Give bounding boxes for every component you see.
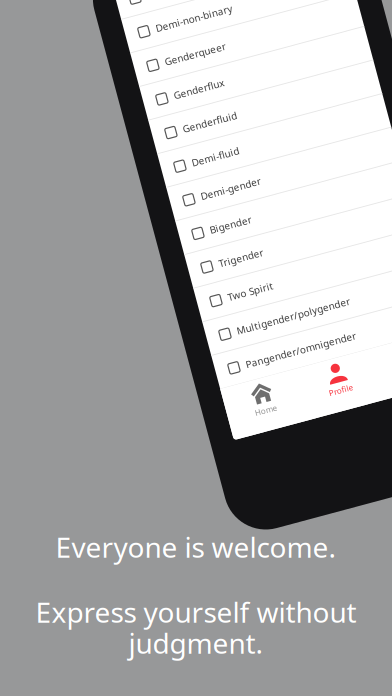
staticText: Pangender/omnigender: [209, 340, 323, 354]
staticText: Bigender: [209, 201, 252, 214]
staticText: Trigender: [209, 236, 255, 249]
staticText: judgment.: [128, 624, 263, 662]
staticText: Home: [206, 391, 229, 401]
staticText: Express yourself without: [35, 593, 356, 631]
button[interactable]: Home: [178, 364, 256, 417]
button[interactable]: Two Spirit: [178, 260, 392, 295]
button[interactable]: Bigender: [178, 190, 392, 225]
button[interactable]: Genderflux: [178, 51, 392, 86]
button[interactable]: Profile: [256, 364, 334, 417]
button[interactable]: Trigender: [178, 225, 392, 260]
button[interactable]: Demi-gender: [178, 156, 392, 190]
button[interactable]: Pangender/omnigender: [178, 330, 392, 364]
staticText: Multigender/polygender: [209, 305, 326, 319]
staticText: Two Spirit: [209, 271, 256, 284]
button[interactable]: Multigender/polygender: [178, 295, 392, 330]
staticText: Demi-gender: [209, 166, 271, 180]
button[interactable]: Genderfluid: [178, 86, 392, 121]
button[interactable]: Demi-fluid: [178, 121, 392, 156]
button[interactable]: Demi-non-binary: [178, 0, 392, 16]
button[interactable]: Genderqueer: [178, 16, 392, 51]
staticText: Genderfluid: [209, 97, 265, 110]
staticText: Everyone is welcome.: [55, 528, 336, 566]
staticText: Demi-fluid: [209, 131, 258, 145]
staticText: Genderflux: [209, 62, 261, 75]
